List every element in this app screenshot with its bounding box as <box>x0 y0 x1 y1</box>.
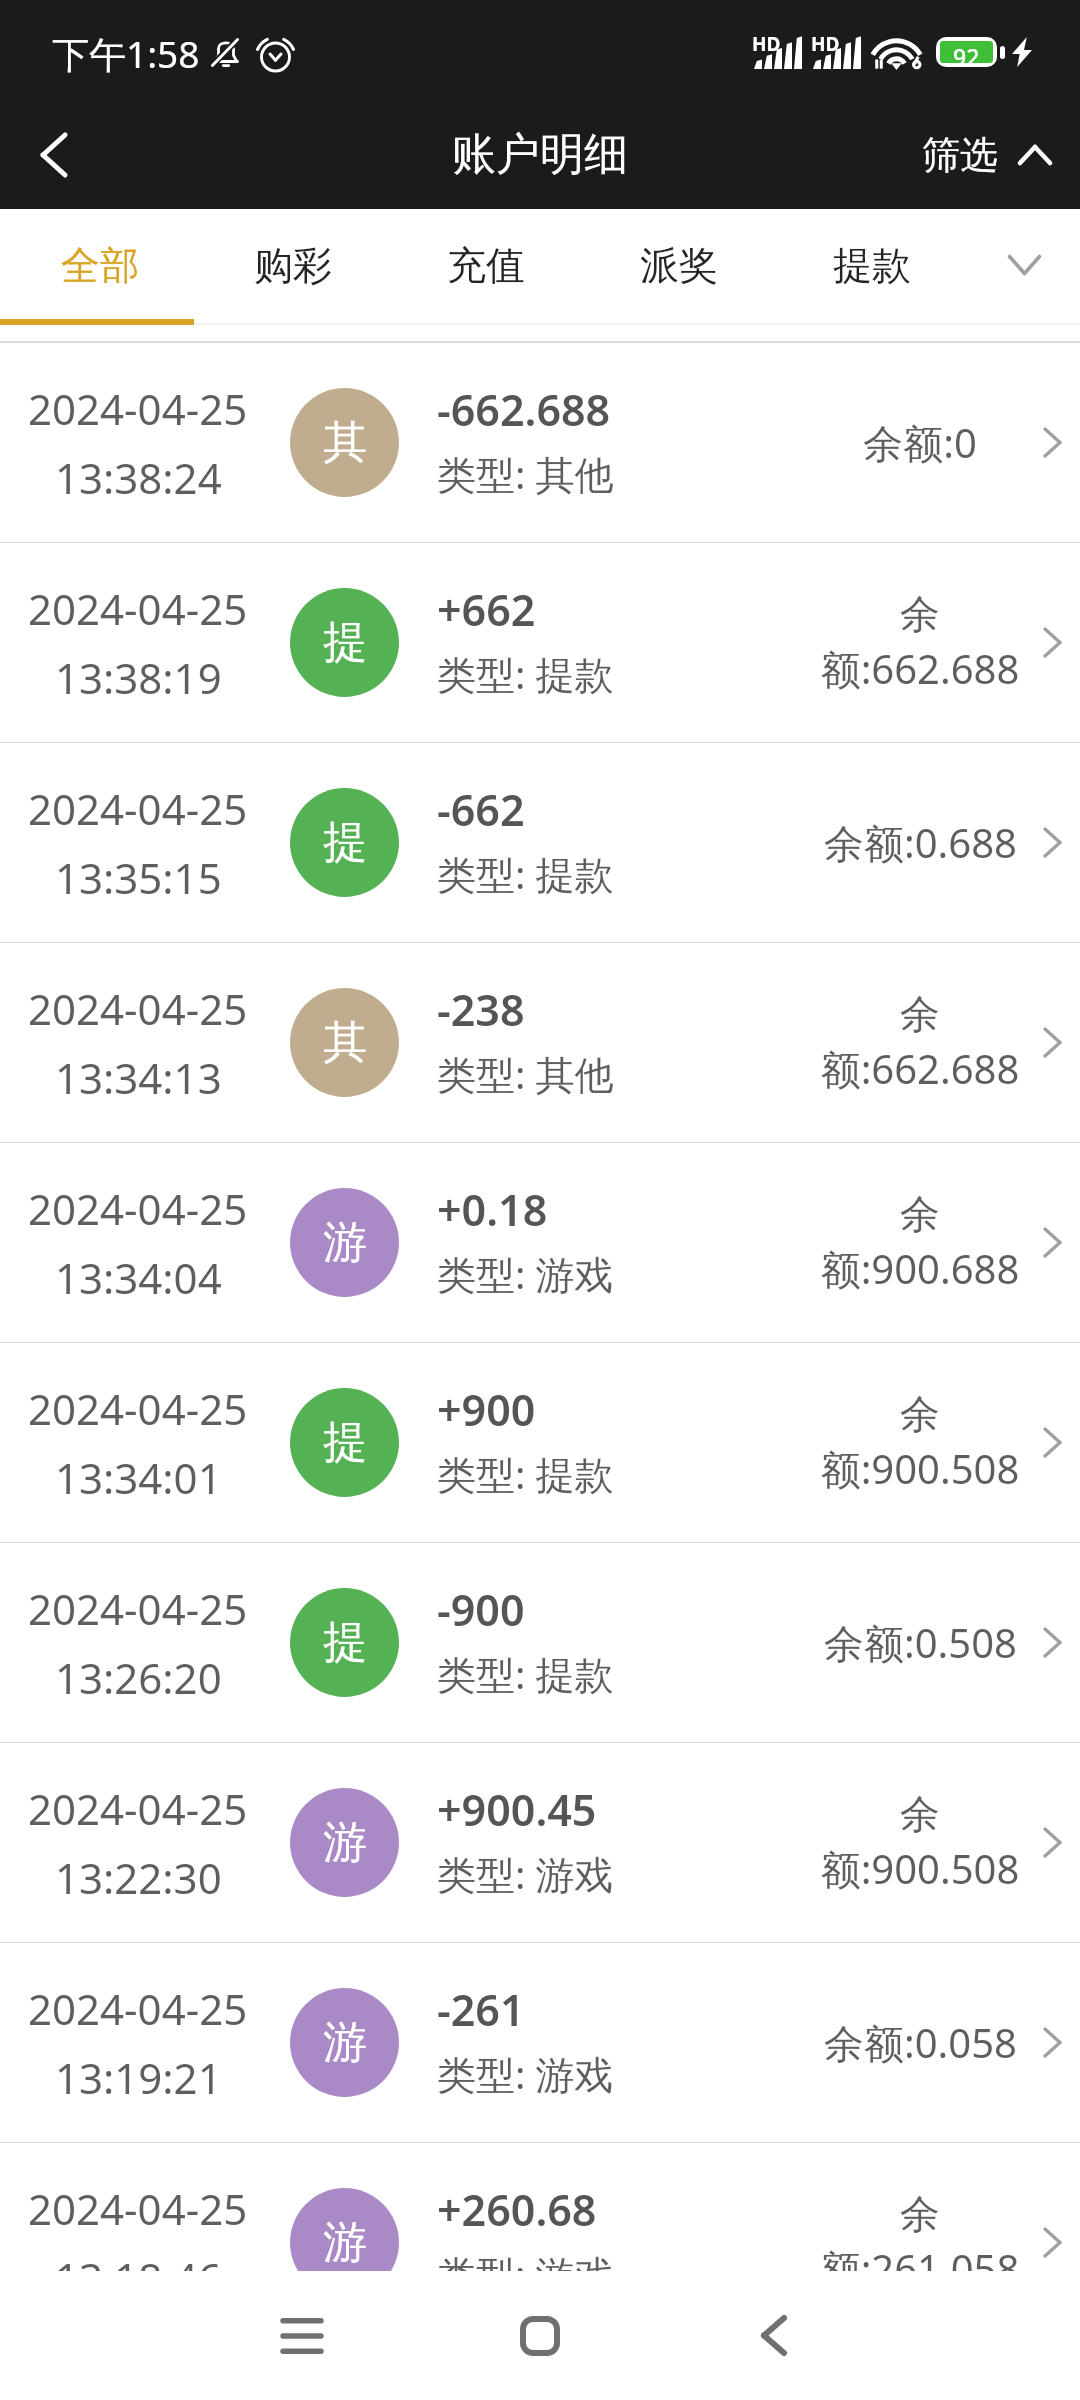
staticText: 类型: 其他 <box>437 447 614 500</box>
staticText: 余额:900.688 <box>815 1189 1025 1296</box>
button[interactable]: 2024-04-25 <box>0 1543 1080 1743</box>
staticText: +900.45 <box>437 1780 597 1839</box>
button[interactable]: 返回 <box>0 100 108 209</box>
staticText: 类型: 提款 <box>437 1647 614 1700</box>
button[interactable]: 派奖 <box>582 209 775 321</box>
staticText: 2024-04-25 <box>28 2180 248 2237</box>
staticText: 余额:662.688 <box>815 989 1025 1096</box>
staticText: 其 <box>323 415 367 470</box>
staticText: 92 <box>953 41 980 63</box>
button[interactable]: 提款 <box>775 209 968 321</box>
staticText: 2024-04-25 <box>28 780 248 837</box>
staticText: +260.68 <box>437 2180 597 2239</box>
button[interactable]: 2024-04-25 <box>0 543 1080 743</box>
staticText: 余额:261.058 <box>815 2189 1025 2271</box>
button[interactable]: 2024-04-25 <box>0 743 1080 943</box>
staticText: 类型: 提款 <box>437 1447 614 1500</box>
staticText: 2024-04-25 <box>28 1180 248 1237</box>
staticText: 余额:900.508 <box>815 1389 1025 1496</box>
staticText: -900 <box>437 1580 525 1639</box>
staticText: 余额:662.688 <box>815 589 1025 696</box>
staticText: 2024-04-25 <box>28 980 248 1037</box>
staticText: 游 <box>323 1815 367 1870</box>
staticText: 类型: 其他 <box>437 1047 614 1100</box>
staticText: 13:34:04 <box>55 1249 222 1306</box>
staticText: -261 <box>437 1980 525 2039</box>
staticText: 游 <box>323 2015 367 2070</box>
button[interactable]: 2024-04-25 <box>0 2143 1080 2271</box>
staticText: 充值 <box>447 241 525 290</box>
staticText: 13:38:24 <box>55 449 222 506</box>
staticText: 全部 <box>61 241 139 290</box>
staticText: 下午1:58 <box>52 28 200 79</box>
staticText: 13:38:19 <box>55 649 222 706</box>
staticText: 提款 <box>833 241 911 290</box>
staticText: 2024-04-25 <box>28 380 248 437</box>
staticText: 2024-04-25 <box>28 1980 248 2037</box>
staticText: 提 <box>323 615 367 670</box>
button[interactable]: 2024-04-25 <box>0 1143 1080 1343</box>
staticText: 提 <box>323 1415 367 1470</box>
staticText: +900 <box>437 1380 536 1439</box>
staticText: 13:34:01 <box>55 1449 222 1506</box>
staticText: -238 <box>437 980 525 1039</box>
staticText: 13:19:21 <box>55 2049 222 2106</box>
button[interactable]: 2024-04-25 <box>0 1343 1080 1543</box>
staticText: 2024-04-25 <box>28 1380 248 1437</box>
staticText: 类型: 提款 <box>437 847 614 900</box>
staticText: 13:26:20 <box>55 1649 222 1706</box>
button[interactable]: 筛选 <box>898 100 1080 209</box>
staticText: 2024-04-25 <box>28 1580 248 1637</box>
staticText: 13:34:13 <box>55 1049 222 1106</box>
staticText: HD <box>752 31 781 57</box>
button[interactable]: 最近任务 <box>222 2271 382 2400</box>
button[interactable]: 购彩 <box>196 209 389 321</box>
staticText: 余额:0.688 <box>824 815 1017 870</box>
staticText: 13:18:46 <box>55 2249 222 2271</box>
staticText: 13:35:15 <box>55 849 222 906</box>
staticText: 提 <box>323 815 367 870</box>
button[interactable]: 充值 <box>389 209 582 321</box>
staticText: 类型: 提款 <box>437 647 614 700</box>
staticText: 购彩 <box>254 241 332 290</box>
staticText: 账户明细 <box>452 127 628 182</box>
staticText: 2024-04-25 <box>28 1780 248 1837</box>
staticText: +0.18 <box>437 1180 548 1239</box>
staticText: 类型: 游戏 <box>437 1247 614 1300</box>
staticText: 余额:900.508 <box>815 1789 1025 1896</box>
staticText: 13:22:30 <box>55 1849 222 1906</box>
button[interactable]: 全部 <box>3 209 196 321</box>
button[interactable]: 展开筛选 <box>968 209 1080 321</box>
staticText: 提 <box>323 1615 367 1670</box>
staticText: +662 <box>437 580 536 639</box>
staticText: 类型: 游戏 <box>437 2247 614 2271</box>
staticText: 余额:0.508 <box>824 1615 1017 1670</box>
button[interactable]: 2024-04-25 <box>0 943 1080 1143</box>
staticText: 余额:0 <box>863 415 977 470</box>
staticText: 类型: 游戏 <box>437 2047 614 2100</box>
staticText: HD <box>811 31 840 57</box>
staticText: 筛选 <box>922 131 998 179</box>
staticText: 2024-04-25 <box>28 580 248 637</box>
staticText: -662.688 <box>437 380 611 439</box>
button[interactable]: 2024-04-25 <box>0 343 1080 543</box>
staticText: -662 <box>437 780 525 839</box>
button[interactable]: 返回 <box>694 2271 854 2400</box>
staticText: 派奖 <box>640 241 718 290</box>
staticText: 余额:0.058 <box>824 2015 1017 2070</box>
staticText: 类型: 游戏 <box>437 1847 614 1900</box>
button[interactable]: 2024-04-25 <box>0 1743 1080 1943</box>
staticText: 其 <box>323 1015 367 1070</box>
staticText: 游 <box>323 1215 367 1270</box>
button[interactable]: 主页 <box>460 2271 620 2400</box>
button[interactable]: 2024-04-25 <box>0 1943 1080 2143</box>
staticText: 游 <box>323 2215 367 2270</box>
